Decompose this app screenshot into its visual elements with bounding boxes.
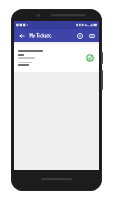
button[interactable]: More options [86,30,97,41]
button[interactable]: Ticket valid [14,44,99,72]
button[interactable]: Search [74,30,85,41]
button[interactable]: Back [16,30,27,41]
button[interactable]: Ticket valid [86,54,94,62]
